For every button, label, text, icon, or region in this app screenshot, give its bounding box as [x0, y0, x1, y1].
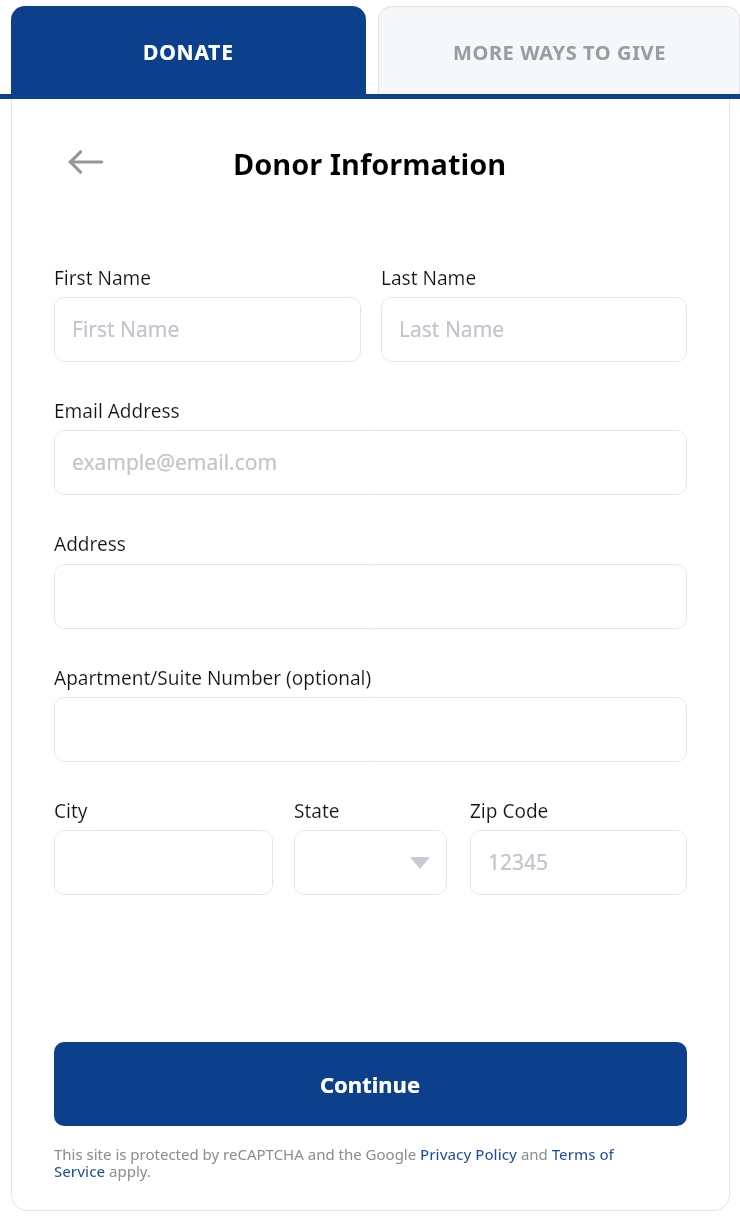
staticText: City [54, 798, 88, 824]
staticText: Last Name [399, 315, 505, 344]
staticText: example@email.com [72, 448, 278, 477]
button[interactable]: 12345 [470, 830, 687, 895]
staticText: This site is protected by reCAPTCHA and … [54, 1144, 654, 1182]
button[interactable]: Back [62, 138, 110, 186]
staticText: First Name [72, 315, 180, 344]
staticText: First Name [54, 265, 152, 291]
staticText: Zip Code [470, 798, 549, 824]
button[interactable]: DONATE [11, 6, 366, 99]
staticText: Email Address [54, 398, 180, 424]
staticText: Continue [320, 1069, 421, 1099]
staticText: 12345 [488, 848, 549, 877]
button[interactable]: Continue [54, 1042, 687, 1126]
staticText: Last Name [381, 265, 477, 291]
button[interactable]: Last Name [381, 297, 687, 362]
button[interactable]: example@email.com [54, 430, 687, 495]
button[interactable]: First Name [54, 297, 361, 362]
button[interactable] [54, 697, 687, 762]
staticText: Address [54, 531, 126, 557]
button[interactable] [294, 830, 447, 895]
staticText: DONATE [143, 38, 234, 67]
staticText: Apartment/Suite Number (optional) [54, 665, 372, 691]
button[interactable] [54, 830, 273, 895]
button[interactable]: MORE WAYS TO GIVE [378, 6, 740, 98]
staticText: State [294, 798, 340, 824]
staticText: MORE WAYS TO GIVE [453, 39, 666, 66]
button[interactable] [54, 564, 687, 629]
staticText: Donor Information [233, 144, 507, 183]
